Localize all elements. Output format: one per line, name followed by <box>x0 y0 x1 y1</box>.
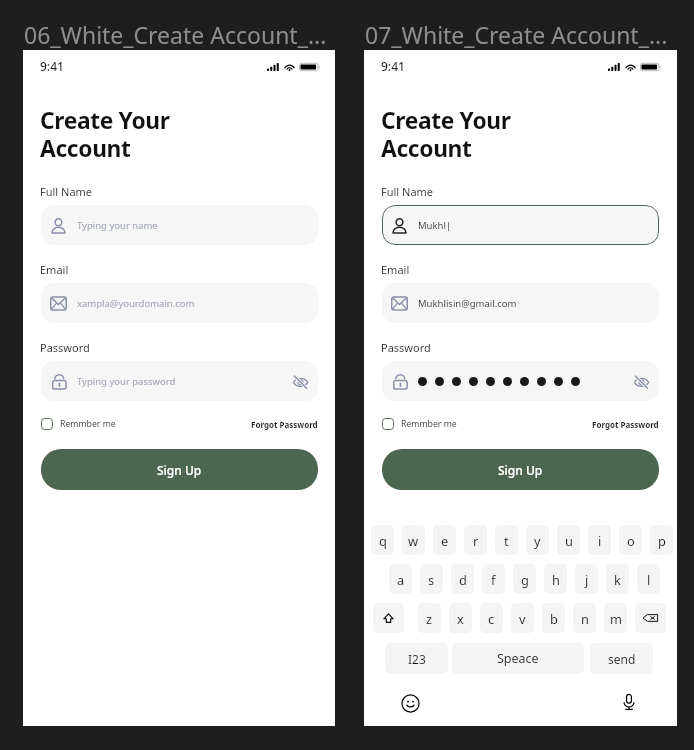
staticText: Create Your Account <box>40 105 170 163</box>
button[interactable]: z <box>418 603 441 633</box>
staticText: Sign Up <box>157 462 202 478</box>
staticText: e <box>441 532 449 549</box>
button[interactable]: Forgot Password <box>251 419 318 430</box>
staticText: Email <box>381 262 410 277</box>
staticText: 07_White_Create Account_... <box>365 19 668 50</box>
button[interactable]: j <box>575 564 598 594</box>
staticText: g <box>521 571 529 588</box>
button[interactable]: c <box>480 603 503 633</box>
staticText: m <box>610 610 622 627</box>
button[interactable]: q <box>371 525 394 555</box>
staticText: Mukhl| <box>418 219 452 232</box>
button[interactable]: v <box>511 603 534 633</box>
staticText: y <box>534 532 541 549</box>
staticText: w <box>408 532 419 549</box>
button[interactable]: r <box>464 525 487 555</box>
staticText: q <box>379 532 387 549</box>
staticText: Typing your password <box>77 375 176 388</box>
staticText: k <box>614 571 621 588</box>
button[interactable]: k <box>606 564 629 594</box>
button[interactable]: Shift <box>373 603 404 633</box>
staticText: j <box>585 571 589 588</box>
staticText: I23 <box>408 651 426 667</box>
staticText: 06_White_Create Account_... <box>24 19 327 50</box>
staticText: Remmber me <box>60 418 116 430</box>
staticText: s <box>428 571 435 588</box>
button[interactable]: Sign Up <box>382 449 659 490</box>
staticText: x <box>457 610 464 627</box>
button[interactable]: o <box>619 525 642 555</box>
button[interactable]: s <box>420 564 443 594</box>
button[interactable]: p <box>650 525 673 555</box>
staticText: Full Name <box>381 184 434 199</box>
button[interactable]: Remmber me <box>382 418 457 430</box>
button[interactable]: d <box>451 564 474 594</box>
button[interactable]: u <box>557 525 580 555</box>
staticText: Typing your name <box>77 219 158 232</box>
staticText: send <box>608 651 636 667</box>
staticText: 9:41 <box>40 58 64 74</box>
staticText: p <box>658 532 666 549</box>
button[interactable]: g <box>513 564 536 594</box>
button[interactable]: Forgot Password <box>592 419 659 430</box>
button[interactable]: x <box>449 603 472 633</box>
button[interactable]: Show password <box>382 361 659 401</box>
button[interactable]: Emoji <box>401 694 420 713</box>
staticText: f <box>491 571 496 588</box>
staticText: d <box>459 571 467 588</box>
staticText: Sign Up <box>498 462 543 478</box>
staticText: b <box>550 610 558 627</box>
staticText: Password <box>381 340 431 355</box>
button[interactable]: xampla@yourdomain.com <box>41 283 318 323</box>
button[interactable]: Mukhl| <box>382 205 659 245</box>
button[interactable]: y <box>526 525 549 555</box>
button[interactable]: Remmber me <box>41 418 116 430</box>
button[interactable]: f <box>482 564 505 594</box>
button[interactable]: n <box>573 603 596 633</box>
staticText: a <box>397 571 405 588</box>
button[interactable]: Speace <box>452 643 584 674</box>
staticText: Mukhlisin@gmail.com <box>418 297 517 310</box>
staticText: Password <box>40 340 90 355</box>
button[interactable]: t <box>495 525 518 555</box>
staticText: t <box>504 532 509 549</box>
staticText: Forgot Password <box>251 419 318 430</box>
button[interactable]: Mukhlisin@gmail.com <box>382 283 659 323</box>
button[interactable]: Show password <box>292 373 309 390</box>
button[interactable]: Sign Up <box>41 449 318 490</box>
staticText: l <box>647 571 651 588</box>
button[interactable]: e <box>433 525 456 555</box>
button[interactable]: Typing your password <box>41 361 318 401</box>
button[interactable]: Voice input <box>619 692 639 712</box>
button[interactable]: I23 <box>385 643 448 674</box>
staticText: n <box>581 610 589 627</box>
staticText: h <box>552 571 560 588</box>
button[interactable]: b <box>542 603 565 633</box>
button[interactable]: Typing your name <box>41 205 318 245</box>
staticText: 9:41 <box>381 58 405 74</box>
staticText: i <box>598 532 602 549</box>
staticText: z <box>426 610 433 627</box>
button[interactable]: m <box>604 603 627 633</box>
staticText: o <box>627 532 635 549</box>
staticText: c <box>488 610 495 627</box>
staticText: r <box>473 532 479 549</box>
button[interactable]: send <box>590 643 653 674</box>
staticText: Forgot Password <box>592 419 659 430</box>
staticText: Speace <box>497 650 539 667</box>
button[interactable]: Backspace <box>635 603 666 633</box>
staticText: Remmber me <box>401 418 457 430</box>
staticText: Email <box>40 262 69 277</box>
staticText: v <box>519 610 526 627</box>
staticText: xampla@yourdomain.com <box>77 297 195 310</box>
staticText: u <box>565 532 573 549</box>
button[interactable]: i <box>588 525 611 555</box>
button[interactable]: h <box>544 564 567 594</box>
button[interactable]: w <box>402 525 425 555</box>
button[interactable]: a <box>389 564 412 594</box>
staticText: Create Your Account <box>381 105 511 163</box>
staticText: Full Name <box>40 184 93 199</box>
button[interactable]: l <box>637 564 660 594</box>
button[interactable]: Show password <box>633 373 650 390</box>
